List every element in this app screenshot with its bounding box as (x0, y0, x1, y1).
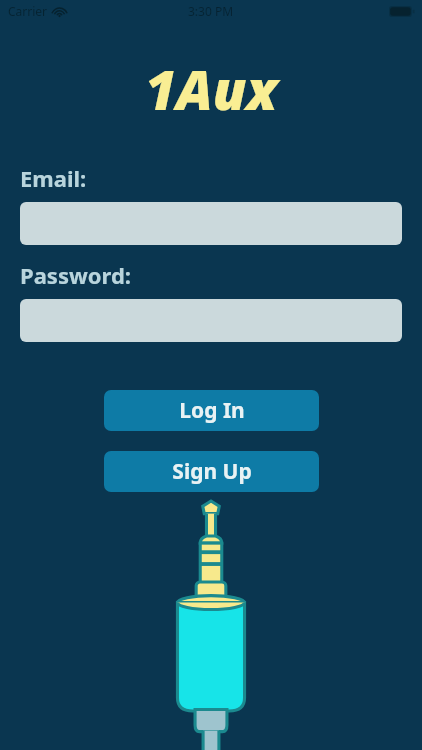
button[interactable] (20, 202, 402, 245)
staticText: Carrier (8, 3, 48, 19)
button[interactable]: Log In (104, 390, 319, 431)
staticText: 3:30 PM (188, 3, 234, 19)
staticText: Email: (20, 163, 87, 193)
button[interactable] (20, 299, 402, 342)
button[interactable]: Sign Up (104, 451, 319, 492)
staticText: 1Aux (145, 52, 277, 126)
staticText: Log In (179, 396, 245, 425)
staticText: Password: (20, 260, 131, 290)
staticText: Sign Up (172, 457, 252, 486)
other: Aux plug illustration (156, 498, 266, 750)
